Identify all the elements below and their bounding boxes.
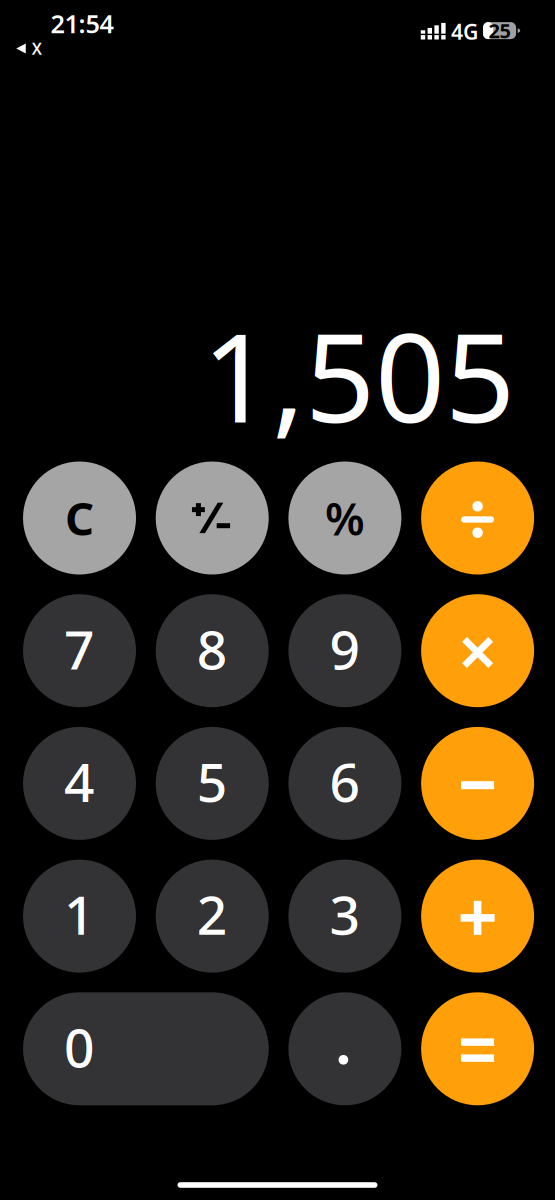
staticText: 7 bbox=[64, 613, 95, 684]
button[interactable]: 7 bbox=[23, 594, 136, 707]
staticText: 9 bbox=[329, 613, 360, 684]
staticText: 8 bbox=[197, 613, 228, 684]
button[interactable]: 2 bbox=[156, 860, 269, 973]
button[interactable]: Plus bbox=[421, 860, 534, 973]
staticText: 2 bbox=[197, 879, 228, 949]
staticText: 5 bbox=[197, 746, 228, 817]
button[interactable]: 3 bbox=[288, 860, 401, 973]
button[interactable]: Plus minus bbox=[156, 461, 269, 574]
staticText: 0 bbox=[64, 1011, 95, 1082]
staticText: 21:54 bbox=[50, 7, 113, 40]
button[interactable]: C bbox=[23, 461, 136, 574]
staticText: C bbox=[65, 488, 94, 548]
staticText: 4G bbox=[451, 17, 478, 46]
button[interactable]: 1 bbox=[23, 860, 136, 973]
button[interactable]: 4 bbox=[23, 727, 136, 840]
staticText: X bbox=[32, 38, 42, 59]
staticText: 4 bbox=[64, 746, 95, 817]
button[interactable]: 5 bbox=[156, 727, 269, 840]
button[interactable]: Divide bbox=[421, 461, 534, 574]
button[interactable]: 6 bbox=[288, 727, 401, 840]
staticText: % bbox=[325, 488, 365, 548]
staticText: 1,505 bbox=[202, 294, 515, 456]
button[interactable]: Decimal point bbox=[288, 992, 401, 1105]
staticText: 25 bbox=[489, 17, 511, 44]
button[interactable]: Multiply bbox=[421, 594, 534, 707]
staticText: 3 bbox=[329, 879, 360, 949]
button[interactable]: Equals bbox=[421, 992, 534, 1105]
button[interactable]: 9 bbox=[288, 594, 401, 707]
staticText: 6 bbox=[329, 746, 360, 817]
button[interactable]: % bbox=[288, 461, 401, 574]
button[interactable]: Minus bbox=[421, 727, 534, 840]
button[interactable]: 8 bbox=[156, 594, 269, 707]
button[interactable]: 0 bbox=[23, 992, 269, 1105]
staticText: 1 bbox=[64, 879, 95, 949]
